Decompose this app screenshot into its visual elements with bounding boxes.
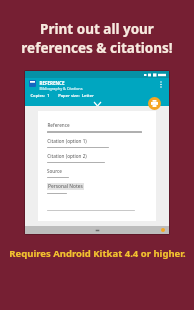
staticText: Personal Notes xyxy=(48,183,83,190)
button[interactable]: Copies: 1 xyxy=(29,93,51,99)
button[interactable]: Print xyxy=(148,97,161,110)
staticText: Bibliography & Citations xyxy=(39,86,83,91)
button[interactable]: Notification xyxy=(161,228,165,232)
staticText: Print out all your xyxy=(40,20,154,38)
staticText: REFERENCE xyxy=(39,80,65,86)
staticText: Source xyxy=(47,168,62,174)
staticText: Paper size: Letter xyxy=(58,93,94,99)
staticText: Requires Android Kitkat 4.4 or higher. xyxy=(9,247,186,260)
button[interactable]: Expand print options xyxy=(25,101,169,106)
staticText: references & citations! xyxy=(21,39,173,57)
staticText: Citation (option 2) xyxy=(47,153,87,159)
button[interactable]: More options xyxy=(157,80,165,88)
staticText: Reference xyxy=(47,122,70,128)
staticText: Citation (option 1) xyxy=(47,138,87,144)
button[interactable]: Paper size: Letter xyxy=(57,93,95,99)
staticText: Copies: 1 xyxy=(30,93,50,99)
other: App icon xyxy=(29,80,36,87)
